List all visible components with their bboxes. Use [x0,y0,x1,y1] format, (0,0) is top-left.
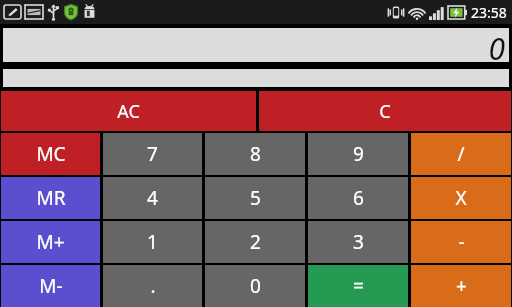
button[interactable]: 0 [205,265,305,307]
button[interactable]: 9 [308,133,408,175]
button[interactable]: 5 [205,177,305,219]
button[interactable]: C [259,91,511,131]
staticText: C [379,99,391,124]
staticText: MC [36,141,66,167]
button[interactable]: 7 [103,133,202,175]
staticText: 9 [353,141,364,167]
staticText: 0 [488,28,505,62]
button[interactable]: 8 [205,133,305,175]
button[interactable]: 3 [308,221,408,263]
staticText: 7 [147,141,158,167]
staticText: 23:58 [471,3,507,22]
button[interactable]: X [411,177,511,219]
staticText: + [456,273,467,299]
staticText: 1 [147,229,158,255]
staticText: 3 [353,229,364,255]
staticText: AC [117,99,140,124]
staticText: = [353,273,364,299]
button[interactable]: + [411,265,511,307]
staticText: 6 [353,185,364,211]
button[interactable]: M+ [1,221,100,263]
button[interactable]: AC [1,91,256,131]
staticText: . [150,273,156,299]
button[interactable]: 2 [205,221,305,263]
staticText: M+ [36,229,65,255]
button[interactable]: / [411,133,511,175]
button[interactable]: MR [1,177,100,219]
button[interactable]: - [411,221,511,263]
button[interactable]: 0 [3,28,509,62]
staticText: 2 [250,229,261,255]
staticText: / [457,141,465,167]
staticText: 4 [147,185,158,211]
button[interactable]: MC [1,133,100,175]
staticText: - [458,229,465,255]
staticText: M- [39,273,63,299]
button[interactable]: . [103,265,202,307]
button[interactable]: 1 [103,221,202,263]
staticText: 0 [250,273,261,299]
staticText: X [455,185,467,211]
button[interactable]: M- [1,265,100,307]
button[interactable]: 4 [103,177,202,219]
button[interactable]: = [308,265,408,307]
staticText: MR [36,185,66,211]
staticText: 5 [250,185,261,211]
button[interactable]: 6 [308,177,408,219]
staticText: 8 [250,141,261,167]
